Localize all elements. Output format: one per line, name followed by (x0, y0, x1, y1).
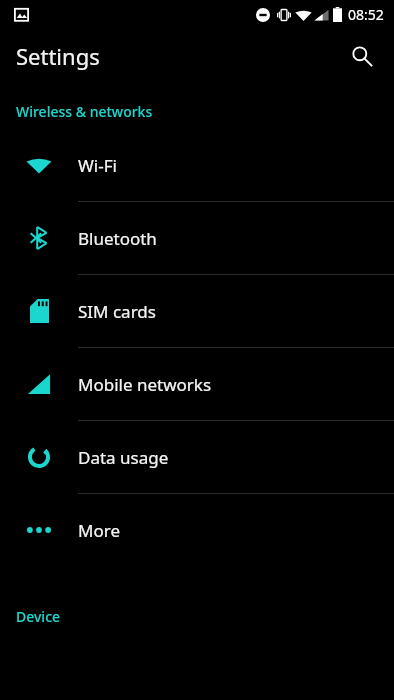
staticText: 08:52 (348, 5, 384, 24)
button[interactable]: Mobile networks (0, 348, 394, 421)
staticText: Settings (16, 41, 100, 71)
button[interactable]: Data usage (0, 421, 394, 494)
staticText: Data usage (78, 446, 169, 469)
staticText: Wireless & networks (16, 102, 153, 121)
button[interactable]: SIM cards (0, 275, 394, 348)
button[interactable]: Bluetooth (0, 202, 394, 275)
staticText: SIM cards (78, 300, 156, 323)
staticText: Device (16, 607, 61, 626)
staticText: More (78, 519, 120, 542)
staticText: Mobile networks (78, 373, 212, 396)
button[interactable]: Wi-Fi (0, 129, 394, 202)
button[interactable]: More (0, 494, 394, 567)
staticText: Wi-Fi (78, 154, 117, 177)
button[interactable]: Search (338, 32, 386, 80)
staticText: Bluetooth (78, 227, 157, 250)
